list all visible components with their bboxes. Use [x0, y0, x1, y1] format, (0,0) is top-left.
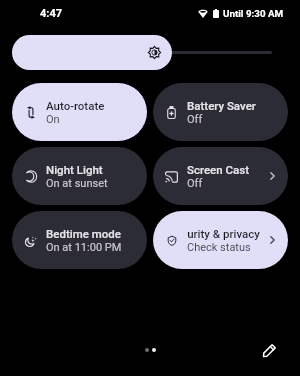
button[interactable]: Edit: [256, 337, 282, 363]
staticText: Until 9:30 AM: [223, 8, 284, 19]
staticText: Battery Saver: [187, 99, 256, 112]
button[interactable]: Night Light: [12, 147, 147, 205]
button[interactable]: Screen Cast: [153, 147, 288, 205]
button[interactable]: Bedtime mode: [12, 211, 147, 269]
staticText: On: [46, 113, 60, 125]
button[interactable]: Auto-rotate: [12, 83, 147, 141]
staticText: 4:47: [40, 7, 63, 20]
staticText: Auto-rotate: [46, 99, 105, 112]
button[interactable]: Security & privacy: [153, 211, 288, 269]
staticText: Security & privacy: [187, 227, 260, 240]
staticText: On at sunset: [46, 177, 108, 189]
staticText: Off: [187, 177, 203, 189]
staticText: Screen Cast: [187, 163, 250, 176]
button[interactable]: Brightness: [12, 35, 172, 70]
staticText: Bedtime mode: [46, 227, 121, 240]
staticText: Off: [187, 113, 203, 125]
staticText: Night Light: [46, 163, 103, 176]
staticText: Check status: [187, 241, 251, 253]
button[interactable]: Battery Saver: [153, 83, 288, 141]
staticText: On at 11:00 PM: [46, 241, 122, 253]
